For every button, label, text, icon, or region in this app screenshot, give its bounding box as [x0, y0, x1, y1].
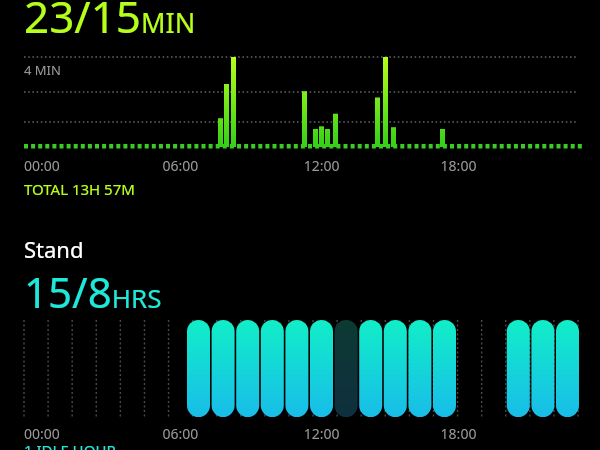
button[interactable]: Activity: Exercise and Stand charts — [0, 0, 600, 450]
